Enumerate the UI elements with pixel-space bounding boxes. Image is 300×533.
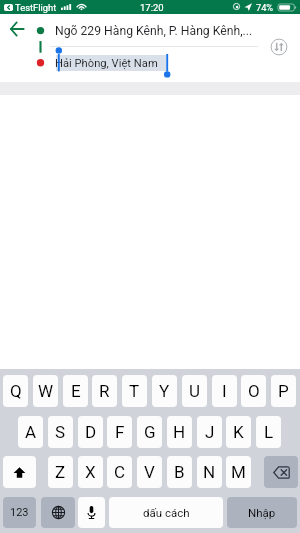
button[interactable]: E <box>63 375 88 407</box>
button[interactable]: Back <box>5 17 29 41</box>
staticText: Ngõ 229 Hàng Kênh, P. Hàng Kênh,... <box>55 24 253 38</box>
button[interactable]: A <box>18 416 43 448</box>
staticText: A <box>25 422 37 442</box>
button[interactable]: J <box>197 416 222 448</box>
button[interactable]: G <box>137 416 162 448</box>
staticText: Q <box>10 381 22 401</box>
staticText: R <box>99 381 110 401</box>
button[interactable]: F <box>107 416 132 448</box>
staticText: K <box>233 422 244 442</box>
staticText: G <box>144 422 156 442</box>
button[interactable]: V <box>137 456 162 488</box>
staticText: N <box>203 462 216 482</box>
staticText: 123 <box>10 506 29 519</box>
staticText: H <box>173 422 186 442</box>
staticText: dấu cách <box>143 506 190 519</box>
staticText: F <box>115 422 125 442</box>
button[interactable]: T <box>122 375 147 407</box>
button[interactable]: Hải Phòng, Việt Nam <box>55 54 185 72</box>
button[interactable]: U <box>182 375 207 407</box>
button[interactable]: Nhập <box>227 497 297 528</box>
staticText: S <box>55 422 66 442</box>
staticText: P <box>278 381 289 401</box>
staticText: L <box>264 422 274 442</box>
button[interactable]: Shift <box>3 456 36 488</box>
button[interactable]: P <box>271 375 296 407</box>
button[interactable]: Y <box>152 375 177 407</box>
button[interactable]: I <box>212 375 237 407</box>
staticText: E <box>71 381 81 401</box>
button[interactable]: Z <box>48 456 73 488</box>
button[interactable]: Q <box>3 375 28 407</box>
staticText: I <box>222 381 227 401</box>
button[interactable]: Change keyboard <box>41 497 75 528</box>
staticText: X <box>85 462 96 482</box>
button[interactable]: L <box>256 416 281 448</box>
staticText: D <box>85 422 97 442</box>
button[interactable]: Numbers <box>3 497 36 528</box>
button[interactable]: H <box>167 416 192 448</box>
staticText: Nhập <box>248 506 276 519</box>
staticText: O <box>248 381 260 401</box>
button[interactable]: C <box>107 456 132 488</box>
staticText: Hải Phòng, Việt Nam <box>55 57 158 70</box>
button[interactable]: X <box>78 456 103 488</box>
staticText: W <box>38 381 54 401</box>
staticText: J <box>205 422 215 442</box>
button[interactable]: Swap start and destination <box>266 34 292 60</box>
button[interactable]: D <box>78 416 103 448</box>
staticText: Z <box>55 462 66 482</box>
staticText: 74% <box>256 2 274 13</box>
staticText: 17:20 <box>140 2 164 13</box>
button[interactable]: dấu cách <box>109 497 223 528</box>
button[interactable]: S <box>48 416 73 448</box>
button[interactable]: Voice input <box>78 497 105 528</box>
staticText: U <box>189 381 201 401</box>
button[interactable]: K <box>226 416 251 448</box>
staticText: Y <box>159 381 170 401</box>
staticText: TestFlight <box>15 2 57 13</box>
staticText: V <box>144 462 155 482</box>
staticText: T <box>129 381 140 401</box>
staticText: C <box>114 462 126 482</box>
button[interactable]: Ngõ 229 Hàng Kênh, P. Hàng Kênh,... <box>55 22 255 40</box>
button[interactable]: W <box>33 375 58 407</box>
button[interactable]: N <box>197 456 222 488</box>
button[interactable]: B <box>167 456 192 488</box>
staticText: B <box>174 462 185 482</box>
staticText: M <box>231 462 246 482</box>
button[interactable]: M <box>226 456 251 488</box>
button[interactable]: O <box>241 375 266 407</box>
button[interactable]: Backspace <box>264 456 298 488</box>
button[interactable]: R <box>92 375 117 407</box>
